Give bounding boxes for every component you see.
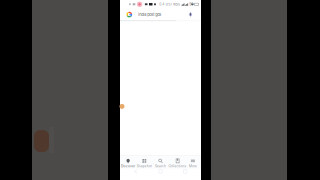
- staticText: 0.4: [159, 2, 164, 6]
- staticText: Discover: [121, 164, 135, 168]
- staticText: Snapshot: [137, 164, 152, 168]
- staticText: india post gds: [138, 12, 161, 17]
- button[interactable]: Collections: [169, 156, 185, 169]
- button[interactable]: Home: [158, 169, 162, 173]
- button[interactable]: More: [185, 156, 201, 169]
- staticText: Collections: [169, 164, 187, 168]
- button[interactable]: Search: [152, 156, 169, 169]
- button[interactable]: Snapshot: [136, 156, 152, 169]
- button[interactable]: Discover: [120, 156, 136, 169]
- staticText: Search: [155, 164, 166, 168]
- staticText: 59: [189, 2, 193, 6]
- staticText: 17.57 KB/s: [165, 2, 180, 6]
- button[interactable]: Back: [134, 169, 138, 174]
- button[interactable]: india post gds: [120, 9, 201, 21]
- button[interactable]: Recent apps: [183, 170, 187, 173]
- staticText: More: [189, 164, 197, 168]
